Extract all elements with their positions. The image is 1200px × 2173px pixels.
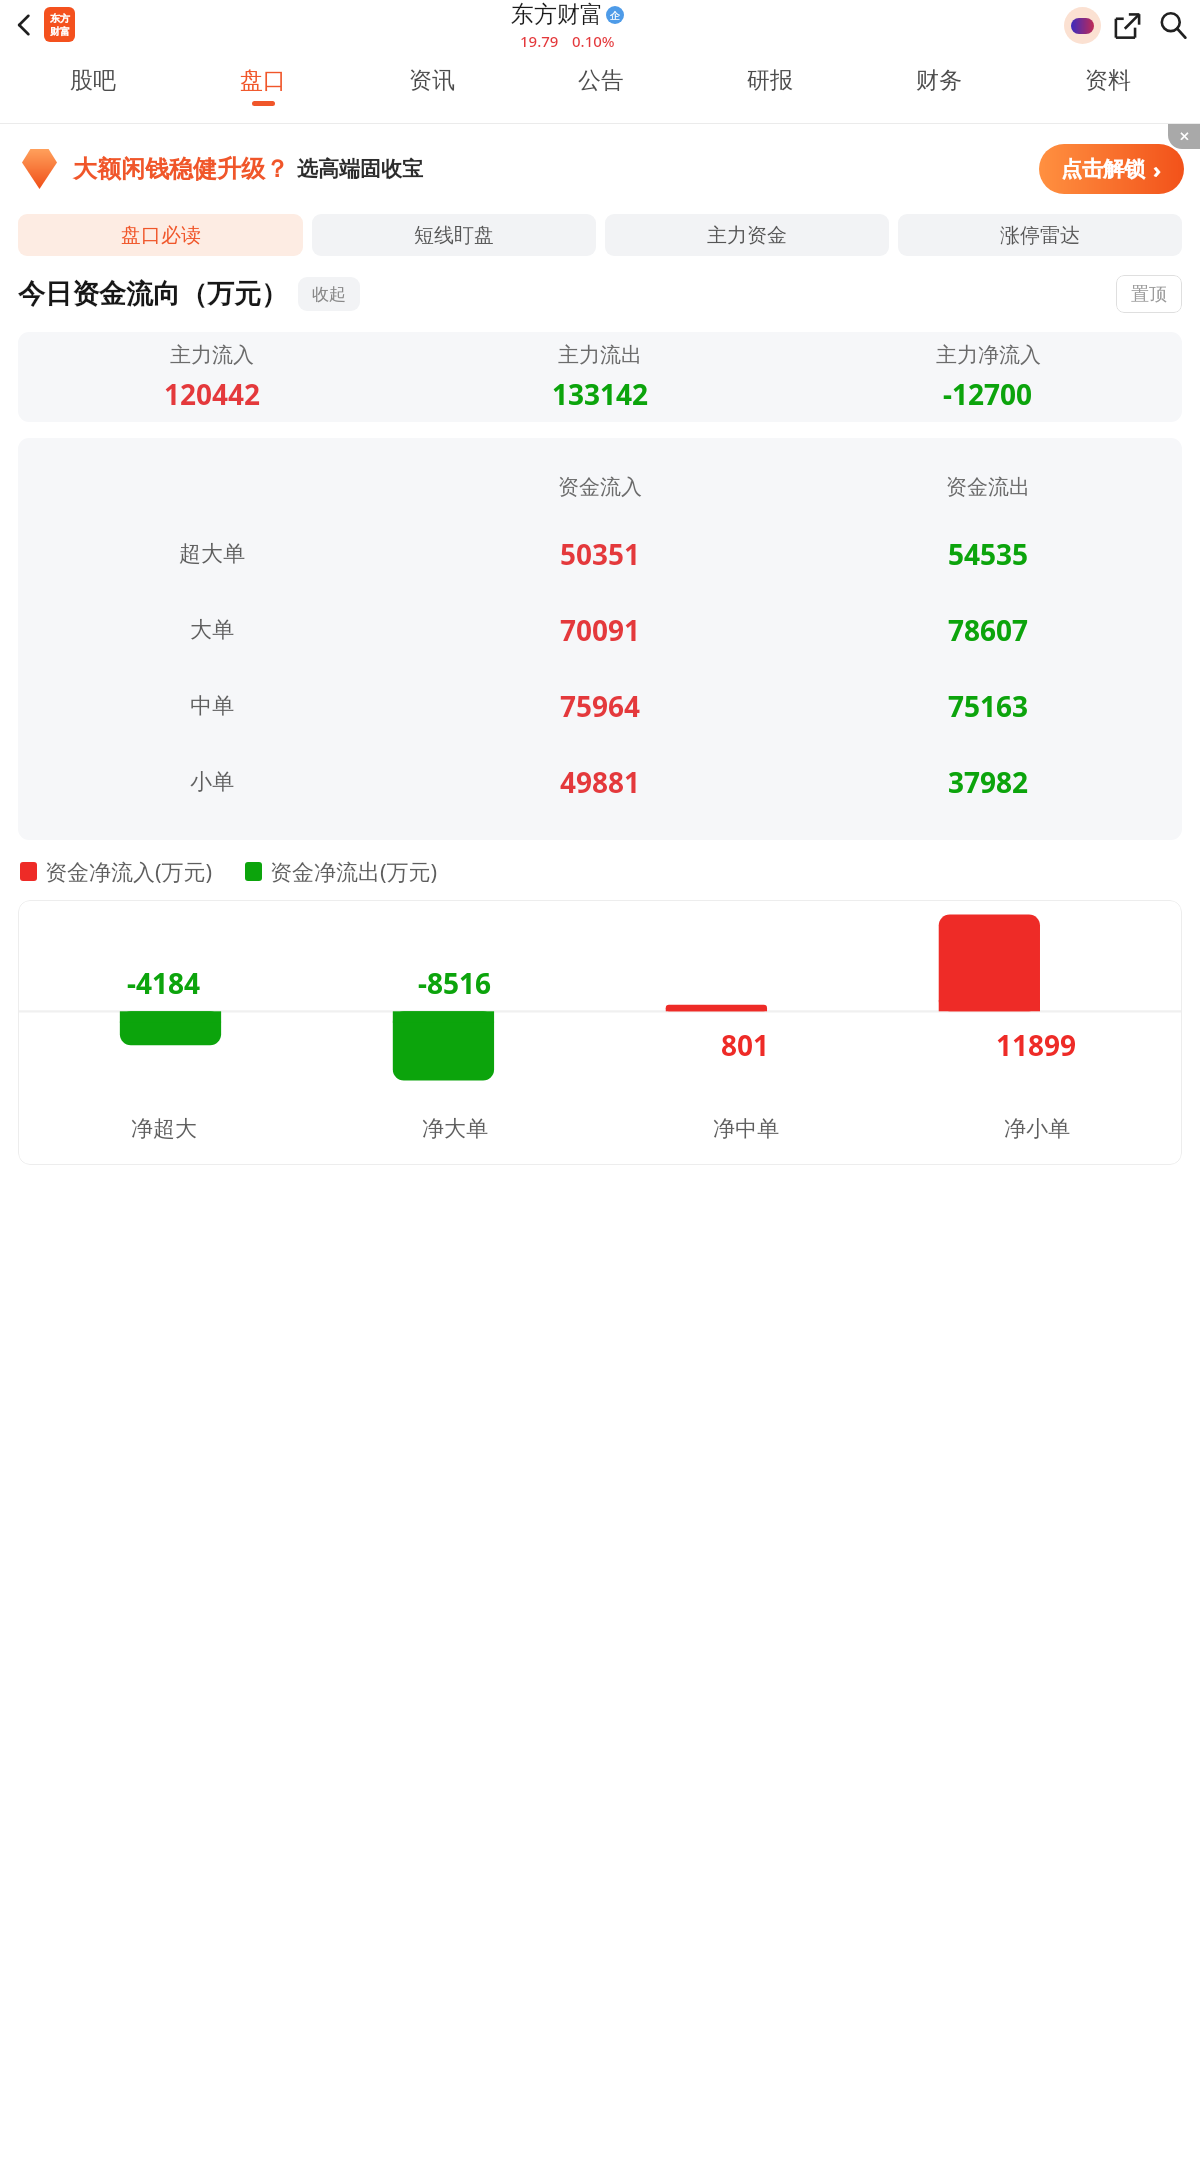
staticText: 主力流入 bbox=[170, 342, 254, 368]
button[interactable]: 资金流入 bbox=[18, 438, 1182, 840]
button[interactable]: Search bbox=[1150, 2, 1196, 48]
staticText: 资料 bbox=[1085, 66, 1131, 95]
staticText: 涨停雷达 bbox=[1000, 223, 1080, 248]
button[interactable]: 研报 bbox=[685, 49, 854, 123]
staticText: 股吧 bbox=[70, 66, 116, 95]
staticText: 49881 bbox=[560, 763, 641, 801]
staticText: 净超大 bbox=[131, 1115, 197, 1143]
button[interactable]: 大单 bbox=[18, 592, 1182, 668]
staticText: 19.79 bbox=[520, 31, 559, 49]
button[interactable]: Share bbox=[1104, 2, 1150, 48]
staticText: 选高端固收宝 bbox=[297, 156, 423, 182]
staticText: -8516 bbox=[418, 964, 492, 1002]
staticText: 财务 bbox=[916, 66, 962, 95]
staticText: 75163 bbox=[948, 687, 1029, 725]
staticText: 75964 bbox=[560, 687, 641, 725]
staticText: 研报 bbox=[747, 66, 793, 95]
staticText: 54535 bbox=[948, 535, 1029, 573]
staticText: 净大单 bbox=[422, 1115, 488, 1143]
staticText: 133142 bbox=[552, 375, 649, 413]
staticText: 净中单 bbox=[713, 1115, 779, 1143]
staticText: 70091 bbox=[560, 611, 641, 649]
staticText: 净小单 bbox=[1004, 1115, 1070, 1143]
staticText: 资讯 bbox=[409, 66, 455, 95]
staticText: 大单 bbox=[190, 616, 234, 644]
staticText: 主力流出 bbox=[558, 342, 642, 368]
button[interactable]: -4184 bbox=[18, 900, 1182, 1165]
button[interactable]: AI assistant bbox=[1060, 3, 1104, 47]
staticText: 资金流入 bbox=[558, 474, 642, 500]
button[interactable]: Back bbox=[4, 5, 44, 45]
button[interactable]: 置顶 bbox=[1116, 275, 1182, 313]
staticText: 50351 bbox=[560, 535, 641, 573]
staticText: 企 bbox=[610, 9, 620, 22]
staticText: 78607 bbox=[948, 611, 1029, 649]
button[interactable]: East Money home bbox=[44, 7, 75, 42]
button[interactable]: 超大单 bbox=[18, 516, 1182, 592]
staticText: 120442 bbox=[164, 375, 261, 413]
button[interactable]: 主力资金 bbox=[605, 214, 889, 256]
button[interactable]: 短线盯盘 bbox=[312, 214, 596, 256]
staticText: 盘口必读 bbox=[121, 223, 201, 248]
staticText: 东方 bbox=[50, 12, 70, 25]
staticText: 主力净流入 bbox=[936, 342, 1041, 368]
staticText: 盘口 bbox=[240, 66, 286, 95]
staticText: 今日资金流向（万元） bbox=[18, 277, 288, 311]
button[interactable]: 点击解锁 bbox=[1039, 144, 1184, 194]
button[interactable]: 盘口 bbox=[178, 49, 347, 123]
button[interactable]: 小单 bbox=[18, 744, 1182, 820]
staticText: 11899 bbox=[996, 1026, 1077, 1064]
button[interactable]: 收起 bbox=[298, 277, 360, 311]
button[interactable]: 股吧 bbox=[8, 49, 178, 123]
staticText: 资金净流入(万元) bbox=[45, 856, 213, 886]
button[interactable]: 公告 bbox=[516, 49, 685, 123]
staticText: -4184 bbox=[127, 964, 201, 1002]
staticText: 短线盯盘 bbox=[414, 223, 494, 248]
button[interactable]: 中单 bbox=[18, 668, 1182, 744]
staticText: 801 bbox=[721, 1026, 770, 1064]
staticText: 超大单 bbox=[179, 540, 245, 568]
button[interactable]: Close advertisement bbox=[1168, 124, 1200, 149]
button[interactable]: 盘口必读 bbox=[18, 214, 303, 256]
staticText: 0.10% bbox=[572, 31, 615, 49]
staticText: 收起 bbox=[312, 284, 346, 305]
staticText: 大额闲钱稳健升级？ bbox=[73, 154, 289, 184]
button[interactable]: 主力流入 bbox=[18, 332, 1182, 422]
staticText: 中单 bbox=[190, 692, 234, 720]
staticText: 置顶 bbox=[1131, 283, 1167, 306]
button[interactable]: 资讯 bbox=[347, 49, 516, 123]
staticText: 公告 bbox=[578, 66, 624, 95]
staticText: -12700 bbox=[943, 375, 1033, 413]
staticText: › bbox=[1153, 154, 1162, 184]
staticText: 财富 bbox=[50, 25, 70, 38]
button[interactable]: 涨停雷达 bbox=[898, 214, 1182, 256]
button[interactable]: 财务 bbox=[854, 49, 1023, 123]
staticText: 东方财富 bbox=[511, 0, 603, 29]
staticText: 点击解锁 bbox=[1061, 156, 1145, 182]
staticText: 小单 bbox=[190, 768, 234, 796]
staticText: 主力资金 bbox=[707, 223, 787, 248]
button[interactable]: 资料 bbox=[1023, 49, 1192, 123]
staticText: 37982 bbox=[948, 763, 1029, 801]
staticText: 资金净流出(万元) bbox=[270, 856, 438, 886]
staticText: 资金流出 bbox=[946, 474, 1030, 500]
staticText: ✕ bbox=[1179, 129, 1190, 144]
